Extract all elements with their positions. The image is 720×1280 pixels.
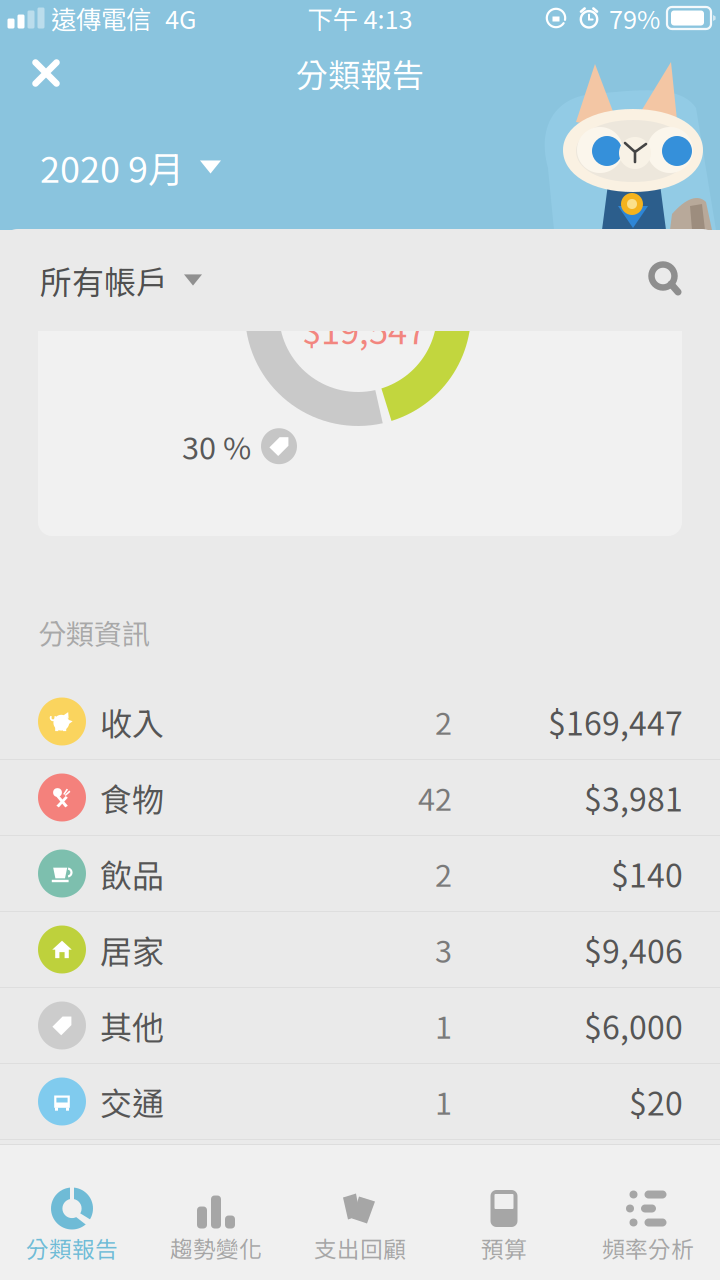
staticText: 1: [435, 1079, 452, 1124]
staticText: 4G: [165, 0, 196, 36]
button[interactable]: 飲品: [0, 836, 720, 912]
button[interactable]: 2020 9月: [0, 108, 241, 226]
staticText: 預算: [481, 1231, 527, 1264]
staticText: 79%: [609, 0, 660, 36]
staticText: 分類報告: [296, 50, 424, 96]
staticText: $169,447: [548, 698, 683, 745]
staticText: 2: [435, 699, 452, 744]
staticText: 交通: [100, 1078, 164, 1125]
staticText: $20: [629, 1078, 683, 1125]
staticText: 支出回顧: [314, 1231, 406, 1264]
button[interactable]: 預算: [432, 1144, 576, 1280]
staticText: 遠傳電信: [51, 0, 151, 36]
staticText: 所有帳戶: [40, 257, 168, 303]
staticText: 收入: [100, 698, 164, 745]
staticText: 1: [435, 1003, 452, 1048]
button[interactable]: 分類報告: [0, 1144, 144, 1280]
staticText: $9,406: [584, 926, 683, 973]
staticText: 分類報告: [26, 1231, 118, 1264]
staticText: 2: [435, 851, 452, 896]
staticText: $6,000: [584, 1002, 683, 1049]
button[interactable]: 頻率分析: [576, 1144, 720, 1280]
staticText: $3,981: [584, 774, 683, 821]
button[interactable]: 其他: [0, 988, 720, 1064]
staticText: 居家: [100, 926, 164, 973]
staticText: $19,547: [302, 304, 426, 354]
staticText: 2020 9月: [40, 141, 184, 193]
staticText: 下午 4:13: [307, 0, 412, 36]
button[interactable]: 支出回顧: [288, 1144, 432, 1280]
staticText: 分類資訊: [38, 612, 150, 652]
staticText: $140: [611, 850, 683, 897]
staticText: 飲品: [100, 850, 164, 897]
staticText: 42: [418, 775, 452, 820]
button[interactable]: 所有帳戶: [0, 229, 216, 331]
button[interactable]: 居家: [0, 912, 720, 988]
button[interactable]: 交通: [0, 1064, 720, 1140]
button[interactable]: Close: [13, 38, 79, 108]
staticText: 3: [435, 927, 452, 972]
button[interactable]: 食物: [0, 760, 720, 836]
staticText: 其他: [100, 1002, 164, 1049]
button[interactable]: 趨勢變化: [144, 1144, 288, 1280]
staticText: 食物: [100, 774, 164, 821]
staticText: 30 %: [182, 424, 251, 468]
button[interactable]: Search: [612, 229, 720, 331]
button[interactable]: 收入: [0, 684, 720, 760]
staticText: 頻率分析: [602, 1231, 694, 1264]
staticText: 趨勢變化: [170, 1231, 262, 1264]
